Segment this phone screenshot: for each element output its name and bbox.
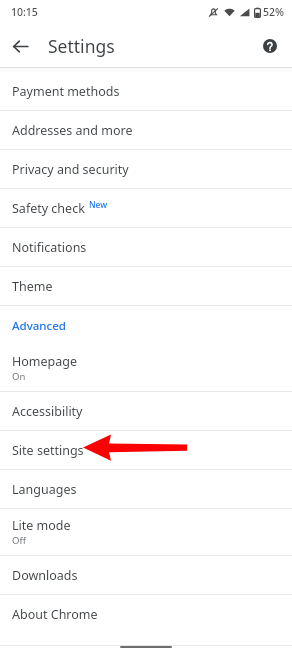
- button[interactable]: Back: [4, 30, 36, 62]
- button[interactable]: Addresses and more: [0, 111, 292, 149]
- staticText: Downloads: [12, 567, 78, 584]
- staticText: Languages: [12, 481, 77, 498]
- staticText: Accessibility: [12, 403, 83, 420]
- staticText: 10:15: [11, 5, 38, 19]
- staticText: Advanced: [12, 318, 66, 334]
- staticText: Payment methods: [12, 83, 120, 100]
- button[interactable]: Lite mode: [0, 509, 292, 555]
- staticText: Off: [12, 534, 26, 547]
- staticText: Addresses and more: [12, 122, 133, 139]
- staticText: 52%: [263, 5, 284, 19]
- staticText: On: [12, 370, 26, 383]
- button[interactable]: Privacy and security: [0, 150, 292, 188]
- staticText: Homepage: [12, 353, 78, 370]
- button[interactable]: Safety check: [0, 189, 292, 227]
- button[interactable]: Payment methods: [0, 72, 292, 110]
- staticText: Settings: [48, 34, 115, 58]
- button[interactable]: About Chrome: [0, 595, 292, 633]
- button[interactable]: Downloads: [0, 556, 292, 594]
- staticText: About Chrome: [12, 606, 98, 623]
- button[interactable]: Accessibility: [0, 392, 292, 430]
- staticText: New: [89, 199, 108, 211]
- staticText: Privacy and security: [12, 161, 129, 178]
- staticText: Safety check: [12, 200, 85, 217]
- button[interactable]: Homepage: [0, 345, 292, 391]
- staticText: Site settings: [12, 442, 84, 459]
- button[interactable]: Help: [255, 31, 285, 61]
- button[interactable]: Theme: [0, 267, 292, 305]
- button[interactable]: Languages: [0, 470, 292, 508]
- button[interactable]: Notifications: [0, 228, 292, 266]
- staticText: Lite mode: [12, 517, 71, 534]
- staticText: Notifications: [12, 239, 87, 256]
- staticText: Theme: [12, 278, 53, 295]
- button[interactable]: Site settings: [0, 431, 292, 469]
